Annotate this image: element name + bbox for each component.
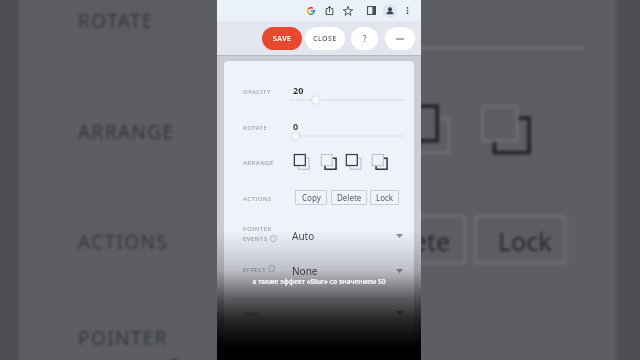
staticText: ACTIONS [243,195,272,203]
staticText: EVENTS [243,235,268,243]
button[interactable]: Help [351,27,378,50]
button[interactable]: Arrange option 1 [293,151,315,173]
staticText: Delete [374,224,451,258]
staticText: None [292,264,318,278]
staticText: Auto [292,229,315,243]
staticText: ARRANGE [78,119,175,145]
button[interactable]: More options [385,27,415,50]
staticText: 20 [293,84,304,96]
button[interactable]: Arrange option 4 [371,151,393,173]
button[interactable]: Copy [295,190,327,205]
button[interactable]: Delete [331,190,367,205]
button[interactable]: Lock [370,190,399,205]
staticText: а также эффект «Blur» со значением 50 [217,277,421,286]
button[interactable]: Arrange option 2 [320,151,342,173]
button[interactable]: Bookmark [339,2,356,19]
staticText: EFFECT [243,266,267,274]
staticText: ROTATE [78,8,154,34]
staticText: Copy [302,192,321,203]
staticText: OPACITY [243,88,271,96]
staticText: SAVE [273,34,292,44]
staticText: ROTATE [243,124,268,132]
button[interactable]: Google Lens [302,2,319,19]
button[interactable]: Pointer events [292,227,403,245]
staticText: Lock [498,224,552,258]
staticText: LINK [243,310,259,318]
staticText: ARRANGE [243,159,274,167]
button[interactable]: Account [381,2,398,19]
staticText: CLOSE [313,34,337,44]
staticText: POINTER [243,225,272,233]
button[interactable]: Effect [292,262,403,280]
button[interactable]: More options [399,2,416,19]
button[interactable]: SAVE [262,27,302,50]
staticText: POINTER [78,325,168,351]
button[interactable]: Arrange option 3 [345,151,367,173]
button[interactable]: CLOSE [305,27,345,50]
staticText: ACTIONS [78,229,169,255]
staticText: 0 [293,120,299,132]
staticText: ? [363,33,367,44]
staticText: Delete [337,192,362,203]
staticText: Lock [376,192,394,203]
button[interactable]: Side panel [363,2,380,19]
button[interactable]: Share [321,2,338,19]
